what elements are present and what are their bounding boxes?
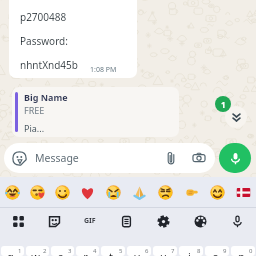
button[interactable]: Clipboard — [108, 208, 145, 234]
button[interactable]: Emoji 7 — [178, 179, 204, 205]
staticText: u — [160, 249, 167, 256]
button[interactable]: Emoji 1 — [25, 179, 50, 205]
staticText: p2700488 — [20, 10, 67, 24]
button[interactable]: p2700488 — [9, 0, 137, 78]
staticText: e — [57, 249, 64, 256]
button[interactable]: Camera — [192, 151, 206, 165]
staticText: 6 — [145, 247, 149, 255]
staticText: t — [109, 249, 113, 256]
button[interactable]: 1 — [215, 96, 231, 112]
button[interactable]: Emoji 8 — [204, 179, 230, 205]
staticText: q — [7, 249, 14, 256]
staticText: GIF — [84, 216, 96, 226]
button[interactable]: Settings — [145, 208, 182, 234]
staticText: Message — [35, 151, 79, 165]
staticText: w — [31, 249, 40, 256]
staticText: r — [83, 249, 88, 256]
staticText: FREE — [24, 104, 45, 116]
button[interactable]: 5 — [101, 246, 125, 256]
staticText: 4 — [93, 247, 97, 255]
button[interactable]: Emoji 3 — [75, 179, 100, 205]
staticText: i — [188, 249, 191, 256]
button[interactable]: Emoji 0 — [0, 179, 25, 205]
staticText: y — [134, 249, 140, 256]
staticText: 3 — [68, 247, 72, 255]
button[interactable]: 1 — [1, 246, 24, 256]
button[interactable]: Voice input — [219, 208, 256, 234]
button[interactable]: 8 — [179, 246, 203, 256]
button[interactable]: Emoji 9 — [230, 179, 256, 205]
button[interactable]: Voice message — [219, 143, 251, 173]
button[interactable]: 3 — [51, 246, 74, 256]
button[interactable]: Attach — [164, 151, 178, 165]
button[interactable]: Apps — [0, 208, 36, 234]
staticText: nhntXnd45b — [20, 58, 78, 72]
staticText: 0 — [249, 247, 253, 255]
button[interactable]: Emoji 4 — [100, 179, 126, 205]
button[interactable]: 7 — [153, 246, 177, 256]
staticText: Pia... — [24, 122, 45, 134]
staticText: 1 — [18, 247, 22, 255]
button[interactable]: Stickers — [36, 208, 72, 234]
staticText: 2 — [43, 247, 47, 255]
staticText: p — [238, 249, 245, 256]
button[interactable]: 0 — [231, 246, 255, 256]
button[interactable]: 4 — [76, 246, 99, 256]
staticText: 1 — [221, 99, 226, 110]
button[interactable]: Big Name — [12, 87, 179, 137]
staticText: o — [212, 249, 219, 256]
button[interactable]: 2 — [26, 246, 49, 256]
button[interactable]: GIF — [72, 208, 108, 234]
button[interactable]: Emoji and stickers — [12, 151, 27, 166]
staticText: 7 — [171, 247, 175, 255]
button[interactable]: Emoji 2 — [50, 179, 75, 205]
button[interactable]: Scroll to bottom — [225, 106, 247, 128]
staticText: 9 — [223, 247, 227, 255]
button[interactable]: Emoji 6 — [152, 179, 178, 205]
button[interactable]: Theme — [182, 208, 219, 234]
button[interactable]: 9 — [205, 246, 229, 256]
button[interactable]: Emoji 5 — [126, 179, 152, 205]
staticText: 5 — [119, 247, 123, 255]
button[interactable]: 6 — [127, 246, 151, 256]
staticText: 8 — [197, 247, 201, 255]
staticText: 1:08 PM — [90, 65, 117, 75]
staticText: Big Name — [24, 91, 68, 103]
button[interactable]: Message — [35, 145, 164, 171]
staticText: Password: — [20, 34, 68, 48]
